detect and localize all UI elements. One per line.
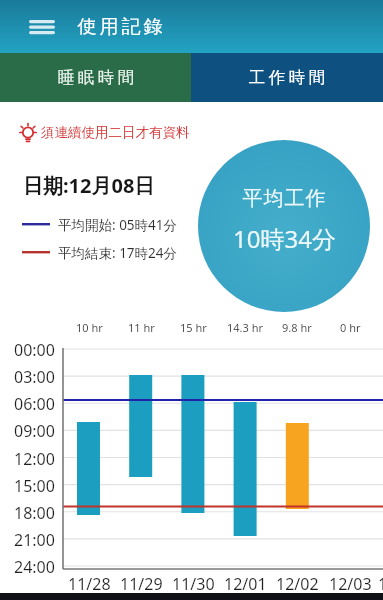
staticText: 使用記錄 — [76, 15, 164, 39]
staticText: 平均工作 — [242, 186, 326, 211]
button[interactable]: 睡眠時間 — [0, 53, 191, 102]
staticText: 11/30 — [172, 573, 215, 595]
staticText: 日期:12月08日 — [23, 172, 155, 199]
staticText: 21:00 — [14, 529, 55, 549]
staticText: 11 hr — [128, 320, 155, 335]
staticText: 12:00 — [14, 448, 55, 468]
staticText: 14.3 hr — [227, 320, 264, 335]
staticText: 09:00 — [14, 420, 55, 440]
staticText: 平均開始: 05時41分 — [58, 216, 178, 234]
staticText: 須連續使用二日才有資料 — [41, 124, 190, 141]
staticText: 03:00 — [14, 366, 55, 386]
staticText: 工作時間 — [247, 67, 327, 88]
staticText: 15:00 — [14, 475, 55, 495]
staticText: 12/03 — [329, 573, 372, 595]
staticText: 11/29 — [120, 573, 163, 595]
staticText: 15 hr — [180, 320, 207, 335]
staticText: 06:00 — [14, 393, 55, 413]
staticText: 0 hr — [340, 320, 361, 335]
staticText: 10 hr — [76, 320, 103, 335]
staticText: 平均結束: 17時24分 — [58, 244, 178, 262]
staticText: 9.8 hr — [282, 320, 312, 335]
staticText: 11/28 — [68, 573, 111, 595]
staticText: 12/01 — [224, 573, 267, 595]
button[interactable] — [20, 12, 64, 42]
staticText: 12/02 — [276, 573, 319, 595]
button[interactable]: 工作時間 — [191, 53, 383, 102]
staticText: 00:00 — [14, 339, 55, 359]
staticText: 18:00 — [14, 502, 55, 522]
staticText: 24:00 — [14, 556, 55, 576]
staticText: 10時34分 — [233, 222, 336, 255]
staticText: 1 — [378, 573, 383, 595]
staticText: 睡眠時間 — [56, 67, 136, 88]
